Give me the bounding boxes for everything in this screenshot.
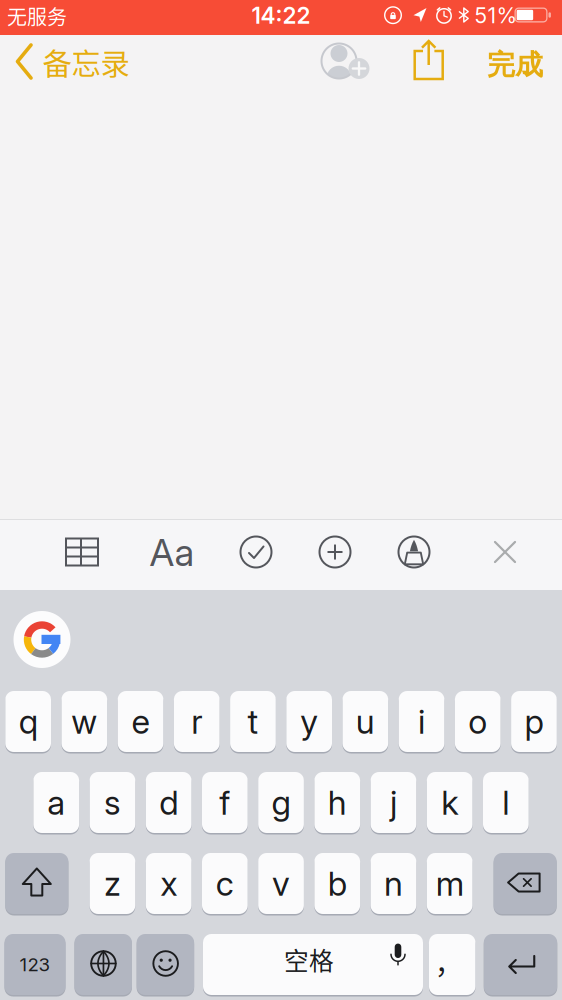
button[interactable]: m <box>427 852 472 915</box>
staticText: 空格 <box>284 942 334 977</box>
staticText: n <box>384 864 403 903</box>
button[interactable]: f <box>202 771 248 834</box>
button[interactable]: y <box>286 690 332 753</box>
button[interactable]: Add attachment <box>318 535 352 569</box>
staticText: u <box>356 702 375 741</box>
staticText: 123 <box>19 953 50 975</box>
staticText: w <box>71 702 97 741</box>
staticText: b <box>328 864 347 903</box>
staticText: f <box>219 783 230 822</box>
button[interactable]: h <box>314 771 360 834</box>
button[interactable]: Checklist <box>239 535 273 569</box>
button[interactable]: d <box>146 771 191 834</box>
button[interactable]: w <box>61 690 107 753</box>
button[interactable]: Space <box>203 933 423 996</box>
button[interactable]: g <box>258 771 304 834</box>
button[interactable]: b <box>314 852 360 915</box>
button[interactable]: Delete <box>494 852 557 915</box>
button[interactable]: 完成 <box>487 47 543 83</box>
staticText: j <box>390 783 397 822</box>
staticText: e <box>132 702 150 741</box>
staticText: ， <box>435 942 463 982</box>
staticText: 备忘录 <box>42 41 129 83</box>
staticText: c <box>216 864 234 903</box>
button[interactable]: Markup <box>397 535 431 569</box>
staticText: g <box>272 783 291 822</box>
staticText: a <box>47 783 65 822</box>
staticText: p <box>524 702 543 741</box>
button[interactable]: Text styles <box>149 530 194 574</box>
button[interactable]: Google search <box>13 611 70 668</box>
button[interactable]: Return <box>484 933 557 996</box>
button[interactable]: k <box>427 771 472 834</box>
button[interactable]: j <box>371 771 416 834</box>
button[interactable]: q <box>5 690 51 753</box>
button[interactable]: Share <box>412 39 445 80</box>
button[interactable]: s <box>90 771 135 834</box>
staticText: z <box>104 864 121 903</box>
button[interactable]: c <box>202 852 248 915</box>
button[interactable]: Insert table <box>65 537 99 566</box>
button[interactable]: z <box>90 852 135 915</box>
button[interactable]: p <box>511 690 557 753</box>
staticText: k <box>441 783 458 822</box>
staticText: s <box>104 783 121 822</box>
staticText: m <box>436 864 464 903</box>
staticText: y <box>300 702 318 741</box>
button[interactable]: v <box>258 852 304 915</box>
button[interactable]: e <box>118 690 163 753</box>
button[interactable]: Add people <box>315 38 371 84</box>
staticText: l <box>502 783 509 822</box>
staticText: t <box>247 702 258 741</box>
staticText: h <box>328 783 347 822</box>
button[interactable]: a <box>33 771 79 834</box>
button[interactable]: Shift <box>5 852 68 915</box>
button[interactable]: Dismiss keyboard <box>493 540 516 563</box>
button[interactable]: o <box>455 690 501 753</box>
button[interactable]: i <box>399 690 444 753</box>
staticText: i <box>418 702 425 741</box>
button[interactable]: Emoji <box>137 933 194 996</box>
button[interactable]: x <box>146 852 191 915</box>
button[interactable]: Comma <box>429 933 475 996</box>
staticText: 完成 <box>487 47 543 83</box>
staticText: q <box>19 702 38 741</box>
button[interactable]: 备忘录 <box>15 39 127 83</box>
button[interactable]: n <box>371 852 416 915</box>
staticText: 51% <box>474 3 517 28</box>
staticText: v <box>272 864 290 903</box>
button[interactable]: Numbers <box>4 933 65 996</box>
button[interactable]: t <box>230 690 276 753</box>
staticText: o <box>468 702 487 741</box>
button[interactable]: Next keyboard <box>74 933 132 996</box>
staticText: d <box>159 783 178 822</box>
button[interactable]: l <box>483 771 529 834</box>
staticText: 无服务 <box>7 1 67 30</box>
staticText: r <box>191 702 202 741</box>
button[interactable]: r <box>174 690 220 753</box>
staticText: 14:22 <box>251 2 310 29</box>
staticText: Aa <box>149 530 194 574</box>
staticText: x <box>160 864 177 903</box>
button[interactable]: u <box>342 690 388 753</box>
